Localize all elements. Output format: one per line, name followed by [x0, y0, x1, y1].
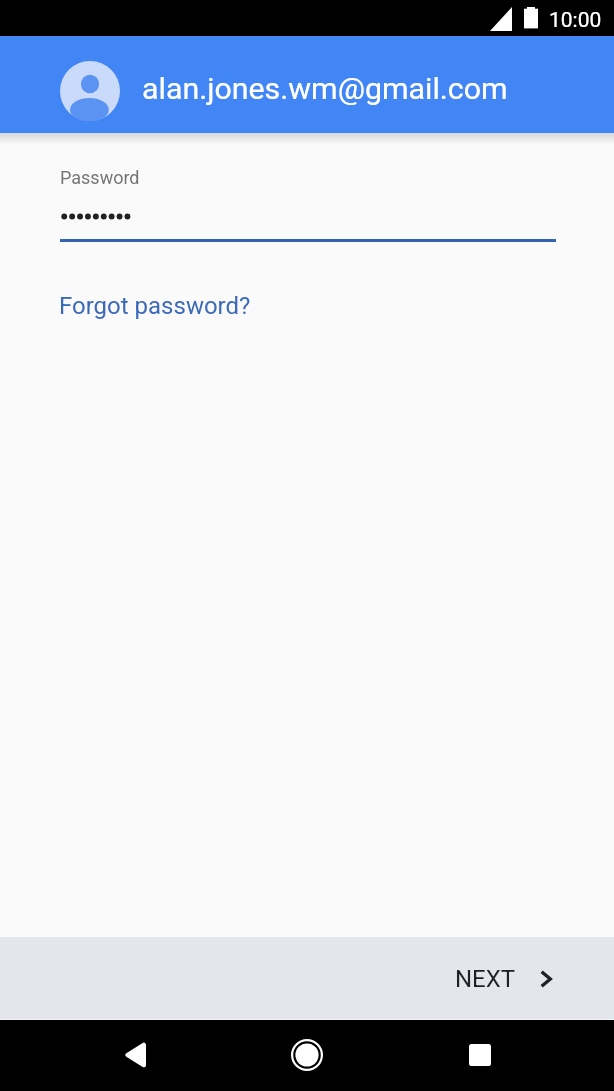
button[interactable]: NEXT	[429, 949, 614, 1009]
button[interactable]: Recent apps	[469, 1044, 491, 1066]
staticText: Forgot password?	[59, 292, 251, 320]
staticText: alan.jones.wm@gmail.com	[142, 71, 508, 107]
staticText: Password	[60, 167, 140, 188]
button[interactable]: Back	[124, 1043, 146, 1067]
staticText: NEXT	[455, 965, 516, 993]
button[interactable]: Forgot password?	[53, 288, 257, 324]
button[interactable]: Home	[291, 1039, 323, 1071]
button[interactable]: alan.jones.wm@gmail.com	[52, 48, 522, 133]
button[interactable]: Password field	[60, 161, 556, 242]
staticText: 10:00	[549, 8, 602, 33]
